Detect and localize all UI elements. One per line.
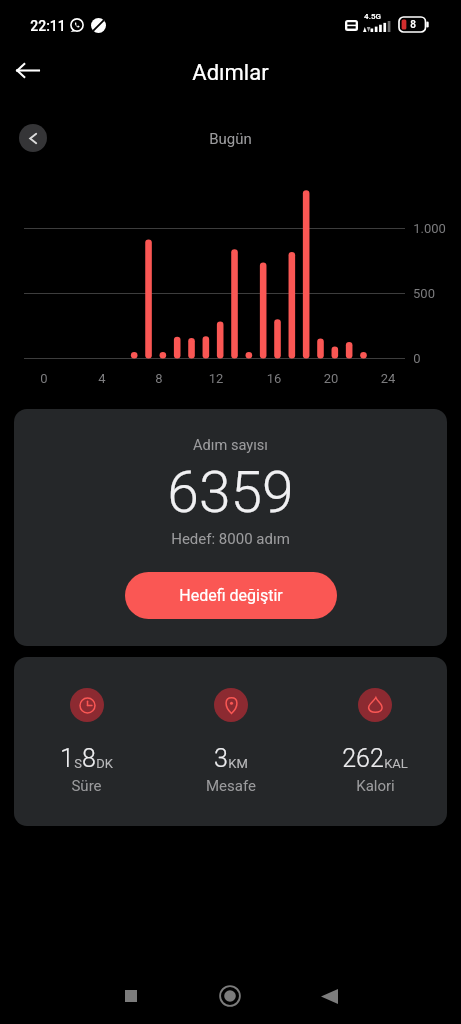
button[interactable]: Home: [192, 972, 268, 1024]
staticText: 8: [82, 744, 96, 773]
staticText: Adımlar: [192, 60, 269, 86]
staticText: 8: [145, 371, 173, 386]
staticText: Bugün: [209, 130, 252, 148]
staticText: 0: [413, 351, 421, 366]
staticText: 16: [260, 371, 288, 386]
button[interactable]: Back: [291, 972, 367, 1024]
staticText: Adım sayısı: [193, 436, 268, 453]
button[interactable]: Previous day: [19, 124, 47, 152]
staticText: Kalori: [356, 777, 395, 795]
staticText: 3: [214, 744, 228, 773]
staticText: 4: [88, 371, 116, 386]
staticText: KM: [228, 756, 248, 771]
button[interactable]: Adım sayısı: [14, 409, 447, 646]
staticText: 8: [410, 19, 416, 31]
staticText: KAL: [384, 756, 408, 771]
staticText: 22:11: [30, 18, 66, 34]
button[interactable]: Back: [4, 47, 50, 93]
button[interactable]: Hedefi değiştir: [125, 572, 337, 619]
staticText: 0: [30, 371, 58, 386]
staticText: 12: [202, 371, 230, 386]
staticText: DK: [96, 756, 113, 771]
staticText: S: [74, 756, 82, 771]
staticText: Hedefi değiştir: [179, 586, 283, 605]
staticText: Hedef: 8000 adım: [171, 530, 290, 548]
staticText: 4.5G: [364, 12, 381, 21]
staticText: 1.000: [413, 221, 446, 236]
staticText: Süre: [71, 777, 102, 795]
staticText: 262: [342, 744, 384, 773]
button[interactable]: 1: [14, 657, 447, 826]
staticText: Mesafe: [206, 777, 256, 795]
staticText: 6359: [167, 459, 294, 526]
staticText: 1: [60, 744, 74, 773]
staticText: 24: [374, 371, 402, 386]
staticText: 20: [317, 371, 345, 386]
button[interactable]: Recents: [93, 972, 169, 1024]
staticText: 500: [413, 286, 435, 301]
